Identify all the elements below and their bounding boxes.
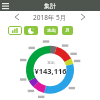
button[interactable]: Previous month	[12, 12, 22, 22]
staticText: 月	[65, 28, 70, 34]
button[interactable]: 支出	[44, 26, 58, 35]
staticText: 支出	[47, 28, 56, 34]
button[interactable]: Menu	[0, 0, 11, 11]
button[interactable]: Next month	[78, 12, 88, 22]
button[interactable]: Pie chart	[24, 26, 38, 35]
staticText: 2018年 5月	[33, 13, 67, 22]
button[interactable]: 月	[62, 26, 73, 35]
button[interactable]: Bar chart	[8, 26, 22, 35]
staticText: 支出	[47, 60, 55, 65]
staticText: ¥143,116	[34, 66, 67, 76]
staticText: 集計	[44, 2, 56, 10]
